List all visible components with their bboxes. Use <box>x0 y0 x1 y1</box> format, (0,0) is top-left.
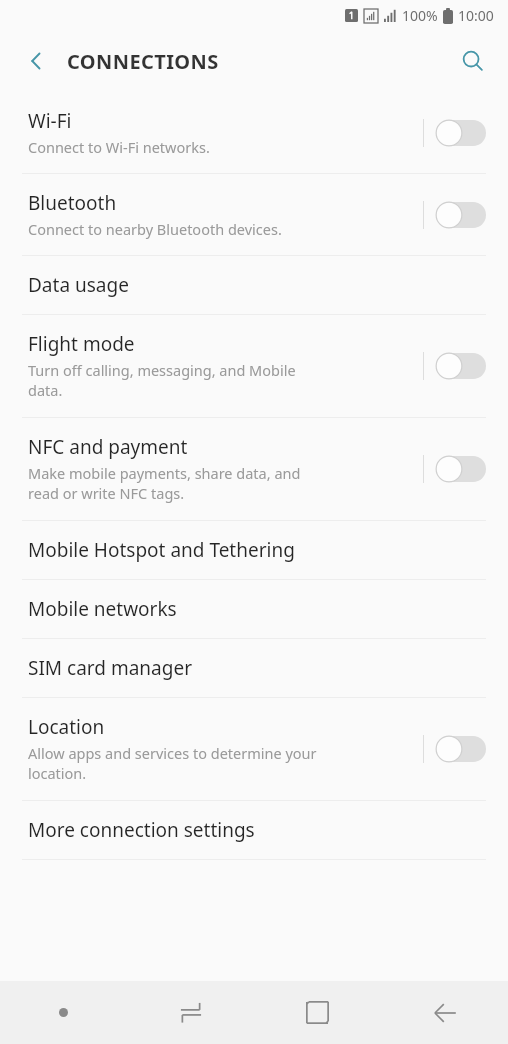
button[interactable]: Flight mode toggle <box>436 346 492 386</box>
button[interactable]: NFC and payment toggle <box>436 449 492 489</box>
staticText: Mobile Hotspot and Tethering <box>28 537 295 563</box>
staticText: Flight mode <box>28 331 135 357</box>
button[interactable]: Search <box>450 38 496 84</box>
button[interactable]: Bluetooth toggle <box>436 195 492 235</box>
button[interactable]: Bluetooth <box>0 174 508 255</box>
staticText: Wi-Fi <box>28 108 72 134</box>
button[interactable]: Wi-Fi toggle <box>436 113 492 153</box>
staticText: 10:00 <box>458 6 494 25</box>
button[interactable]: Home <box>254 981 381 1044</box>
staticText: Connect to Wi-Fi networks. <box>28 137 210 157</box>
staticText: More connection settings <box>28 817 255 843</box>
button[interactable]: Location <box>0 698 508 800</box>
button[interactable]: Data usage <box>0 256 508 314</box>
button[interactable]: Flight mode <box>0 315 508 417</box>
staticText: 100% <box>402 6 438 25</box>
button[interactable]: Location toggle <box>436 729 492 769</box>
button[interactable]: Recent apps <box>127 981 254 1044</box>
staticText: Make mobile payments, share data, and re… <box>28 463 301 504</box>
button[interactable]: Back <box>381 981 508 1044</box>
staticText: Data usage <box>28 272 129 298</box>
staticText: NFC and payment <box>28 434 188 460</box>
staticText: Connect to nearby Bluetooth devices. <box>28 219 282 239</box>
staticText: SIM card manager <box>28 655 192 681</box>
button[interactable]: Hide navigation bar <box>0 981 127 1044</box>
button[interactable]: Mobile networks <box>0 580 508 638</box>
button[interactable]: Wi-Fi <box>0 92 508 173</box>
staticText: Turn off calling, messaging, and Mobile … <box>28 360 296 401</box>
staticText: Mobile networks <box>28 596 177 622</box>
button[interactable]: More connection settings <box>0 801 508 859</box>
button[interactable]: SIM card manager <box>0 639 508 697</box>
button[interactable]: Navigate up <box>14 39 58 83</box>
staticText: CONNECTIONS <box>67 48 219 75</box>
staticText: Bluetooth <box>28 190 117 216</box>
staticText: Location <box>28 714 105 740</box>
button[interactable]: NFC and payment <box>0 418 508 520</box>
button[interactable]: Mobile Hotspot and Tethering <box>0 521 508 579</box>
staticText: Allow apps and services to determine you… <box>28 743 317 784</box>
